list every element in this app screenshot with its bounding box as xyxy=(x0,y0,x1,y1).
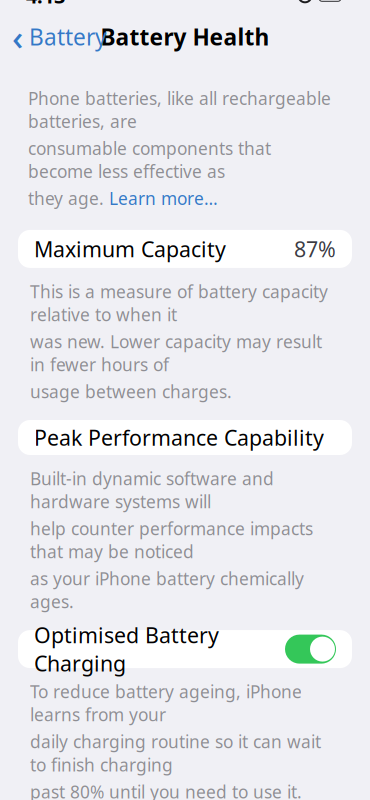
staticText: usage between charges. xyxy=(30,380,232,403)
staticText: This is a measure of battery capacity re… xyxy=(30,280,328,326)
button[interactable]: Optimised Battery Charging xyxy=(18,630,352,668)
staticText: as your iPhone battery chemically ages. xyxy=(30,567,304,613)
button[interactable]: Learn more… xyxy=(109,187,218,210)
staticText: Optimised Battery Charging xyxy=(34,621,219,677)
staticText: Peak Performance Capability xyxy=(34,423,324,452)
staticText: was new. Lower capacity may result in fe… xyxy=(30,330,322,376)
staticText: help counter performance impacts that ma… xyxy=(30,517,313,563)
staticText: past 80% until you need to use it. xyxy=(30,780,302,800)
staticText: ‹ xyxy=(12,14,23,60)
button[interactable]: Maximum Capacity xyxy=(18,230,352,268)
staticText: Learn more… xyxy=(109,187,218,210)
staticText: they age. xyxy=(28,187,109,210)
staticText: consumable components that become less e… xyxy=(28,137,271,183)
staticText: Maximum Capacity xyxy=(34,235,226,263)
staticText: Battery Health xyxy=(100,22,269,52)
staticText: 4:13 xyxy=(26,0,65,9)
staticText: daily charging routine so it can wait to… xyxy=(30,730,321,776)
staticText: 87% xyxy=(294,235,336,263)
staticText: To reduce battery ageing, iPhone learns … xyxy=(30,680,302,726)
button[interactable]: Peak Performance Capability xyxy=(18,420,352,455)
staticText: Phone batteries, like all rechargeable b… xyxy=(28,87,331,133)
button[interactable]: ‹ xyxy=(0,10,119,64)
staticText: Built-in dynamic software and hardware s… xyxy=(30,467,274,513)
staticText: Battery xyxy=(29,22,107,52)
